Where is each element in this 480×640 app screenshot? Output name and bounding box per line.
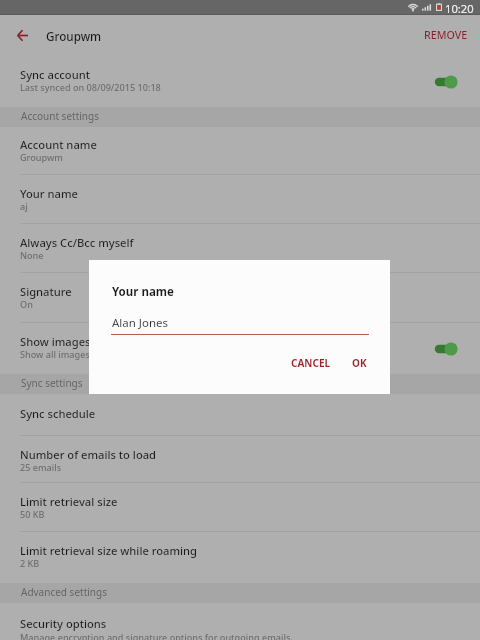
staticText: aj [20,200,28,212]
staticText: OK [352,356,367,370]
button[interactable]: CANCEL [287,352,335,374]
staticText: Sync account [20,67,91,82]
staticText: Manage encryption and signature options … [20,631,293,640]
button[interactable]: REMOVE [418,24,470,47]
button[interactable]: Limit retrieval size [0,483,480,532]
staticText: Limit retrieval size while roaming [20,543,198,558]
staticText: Alan Jones [112,315,169,331]
staticText: None [20,249,44,261]
staticText: Groupwm [20,151,63,163]
staticText: Limit retrieval size [20,494,118,509]
staticText: Advanced settings [21,585,107,599]
staticText: Show images [20,334,91,349]
button[interactable]: Always Cc/Bcc myself [0,224,480,273]
staticText: 2 KB [20,557,40,569]
staticText: CANCEL [291,356,331,370]
button[interactable]: Sync account toggle [430,72,464,92]
staticText: 25 emails [20,461,62,473]
staticText: Your name [20,186,78,201]
staticText: Last synced on 08/09/2015 10:18 [20,81,161,93]
staticText: Number of emails to load [20,447,157,462]
button[interactable]: Show images [0,323,480,374]
staticText: Your name [112,284,174,300]
button[interactable]: Signature [0,273,480,323]
staticText: 10:20 [445,1,474,16]
button[interactable]: Navigate up [10,23,35,48]
button[interactable]: Limit retrieval size while roaming [0,532,480,583]
staticText: On [20,298,33,310]
button[interactable]: Sync schedule [0,394,480,436]
button[interactable]: Security options [0,603,480,640]
staticText: Sync settings [21,376,83,390]
staticText: Groupwm [46,28,102,44]
staticText: Account settings [21,109,99,123]
button[interactable]: Your name [0,175,480,224]
button[interactable]: Sync account toggle [430,339,464,359]
staticText: 50 KB [20,508,45,520]
staticText: Sync schedule [20,406,96,421]
staticText: Signature [20,284,72,299]
button[interactable]: OK [348,352,371,374]
staticText: Account name [20,137,97,152]
button[interactable]: Account name [0,127,480,175]
button[interactable]: Number of emails to load [0,436,480,483]
button[interactable]: Sync account [0,56,480,107]
staticText: Always Cc/Bcc myself [20,235,134,250]
staticText: Show all images [20,348,90,360]
staticText: Security options [20,616,107,631]
